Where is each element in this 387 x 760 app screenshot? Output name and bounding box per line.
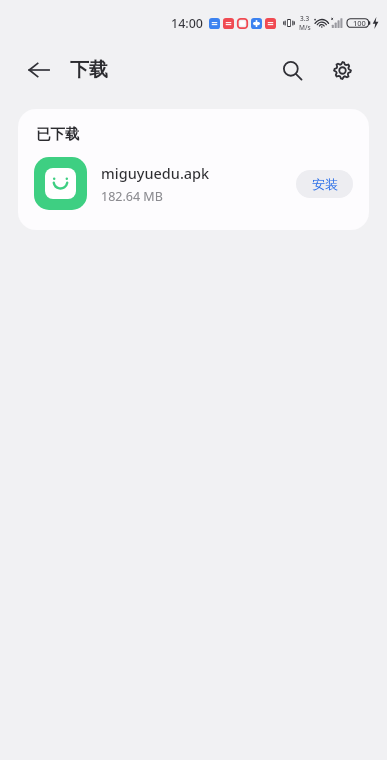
staticText: 已下载: [36, 125, 80, 143]
staticText: 100: [353, 18, 366, 28]
staticText: 安装: [312, 176, 338, 192]
button[interactable]: Back: [22, 53, 108, 87]
staticText: miguyuedu.apk: [101, 163, 210, 183]
button[interactable]: Search: [273, 51, 311, 89]
button[interactable]: Settings: [323, 51, 361, 89]
staticText: 14:00: [171, 15, 204, 32]
staticText: 3.3: [300, 14, 310, 23]
other: Back: [22, 53, 56, 87]
staticText: 下载: [70, 58, 108, 82]
staticText: 182.64 MB: [101, 188, 163, 205]
button[interactable]: 安装: [296, 170, 353, 198]
button[interactable]: miguyuedu.apk: [18, 157, 369, 210]
staticText: M/s: [299, 23, 311, 32]
